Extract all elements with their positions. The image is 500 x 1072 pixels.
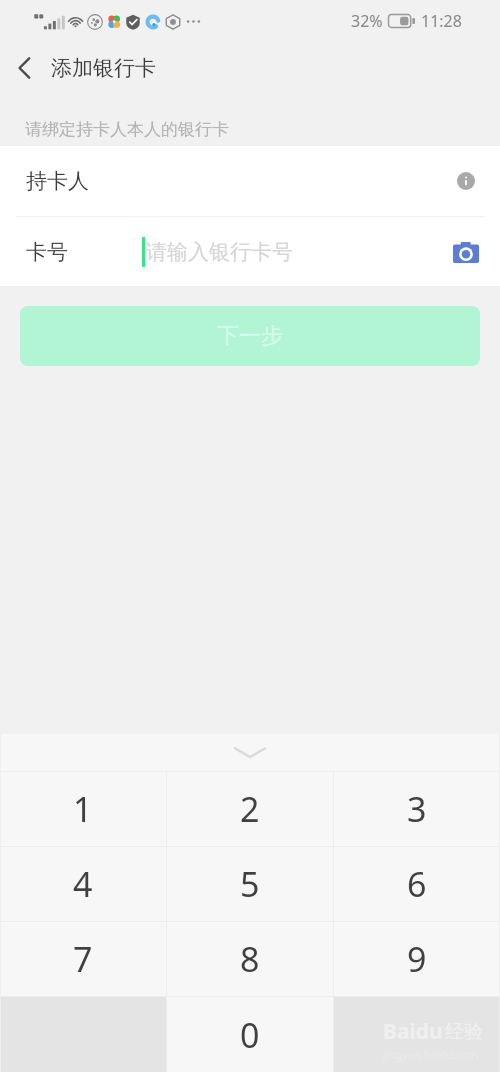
staticText: Baidu [383, 1017, 443, 1046]
button[interactable]: 1 [0, 772, 166, 846]
staticText: 4 [73, 861, 93, 907]
staticText: 下一步 [217, 322, 283, 350]
staticText: 5 [240, 861, 260, 907]
staticText: 添加银行卡 [51, 55, 156, 81]
staticText: 7 [73, 936, 93, 982]
staticText: 持卡人 [26, 168, 89, 194]
button[interactable]: 4 [0, 847, 166, 921]
button[interactable]: 0 [167, 997, 333, 1072]
button[interactable]: 下一步 [20, 306, 480, 366]
staticText: 卡号 [26, 239, 68, 265]
staticText: 32% [351, 10, 383, 32]
button[interactable]: Back [0, 42, 48, 94]
staticText: 请输入银行卡号 [146, 239, 293, 265]
staticText: 11:28 [421, 10, 462, 32]
staticText: 3 [407, 786, 427, 832]
staticText: 8 [240, 936, 260, 982]
staticText: 0 [240, 1012, 260, 1058]
button[interactable]: 9 [334, 922, 500, 996]
button[interactable]: 6 [334, 847, 500, 921]
staticText: 1 [73, 786, 93, 832]
staticText: 请绑定持卡人本人的银行卡 [25, 119, 229, 140]
staticText: 9 [407, 936, 427, 982]
button[interactable]: 3 [334, 772, 500, 846]
staticText: 6 [407, 861, 427, 907]
button[interactable]: Info [455, 170, 477, 192]
button[interactable]: 8 [167, 922, 333, 996]
staticText: 2 [240, 786, 260, 832]
button[interactable]: 2 [167, 772, 333, 846]
button[interactable]: Scan card [452, 238, 480, 266]
button[interactable]: 5 [167, 847, 333, 921]
staticText: 经验 [445, 1020, 483, 1044]
button[interactable]: 7 [0, 922, 166, 996]
